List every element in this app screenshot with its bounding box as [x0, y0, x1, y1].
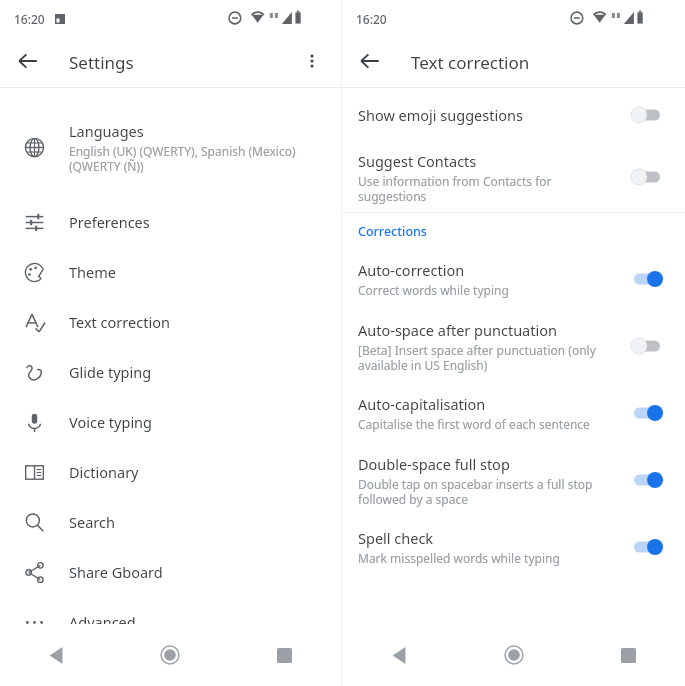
staticText: Correct words while typing [358, 282, 509, 298]
button[interactable]: Recents [571, 624, 685, 686]
staticText: Glide typing [69, 362, 152, 382]
button[interactable]: Search [0, 497, 341, 547]
button[interactable]: Advanced [0, 597, 341, 647]
button[interactable]: Auto-capitalisation [342, 382, 685, 444]
staticText: Dictionary [69, 462, 139, 482]
staticText: Use information from Contacts for sugges… [358, 173, 552, 204]
staticText: Share Gboard [69, 562, 163, 582]
staticText: Voice typing [69, 412, 152, 432]
button[interactable]: Double-space full stop [342, 444, 685, 516]
button[interactable]: Spell check [342, 516, 685, 578]
staticText: Languages [69, 121, 144, 141]
staticText: Mark misspelled words while typing [358, 550, 560, 566]
staticText: Theme [69, 262, 116, 282]
button[interactable]: Back [350, 41, 390, 81]
button[interactable]: Share Gboard [0, 547, 341, 597]
button[interactable]: More options [292, 41, 332, 81]
button[interactable]: Languages [0, 97, 341, 197]
staticText: Settings [69, 51, 134, 74]
staticText: Spell check [358, 528, 434, 548]
staticText: Corrections [358, 223, 427, 240]
staticText: [Beta] Insert space after punctuation (o… [358, 342, 596, 373]
staticText: 16:20 [356, 11, 387, 27]
staticText: Capitalise the first word of each senten… [358, 416, 590, 432]
staticText: Preferences [69, 212, 150, 232]
staticText: Text correction [411, 51, 530, 74]
button[interactable]: Back [8, 41, 48, 81]
button[interactable]: Auto-correction [342, 248, 685, 310]
staticText: 16:20 [14, 11, 45, 27]
button[interactable]: Suggest Contacts [342, 142, 685, 212]
staticText: Text correction [69, 312, 170, 332]
staticText: Auto-space after punctuation [358, 320, 557, 340]
button[interactable]: Auto-space after punctuation [342, 310, 685, 382]
staticText: Double tap on spacebar inserts a full st… [358, 476, 593, 507]
staticText: Show emoji suggestions [358, 105, 523, 125]
button[interactable]: Back [0, 624, 113, 686]
button[interactable]: Preferences [0, 197, 341, 247]
button[interactable]: Glide typing [0, 347, 341, 397]
staticText: Double-space full stop [358, 454, 510, 474]
button[interactable]: Back [342, 624, 457, 686]
button[interactable]: Text correction [0, 297, 341, 347]
button[interactable]: Show emoji suggestions [342, 88, 685, 142]
staticText: Suggest Contacts [358, 151, 477, 171]
button[interactable]: Recents [227, 624, 341, 686]
staticText: Search [69, 512, 115, 532]
button[interactable]: Voice typing [0, 397, 341, 447]
button[interactable]: Dictionary [0, 447, 341, 497]
staticText: Advanced [69, 612, 136, 632]
button[interactable]: Theme [0, 247, 341, 297]
staticText: Auto-correction [358, 260, 465, 280]
button[interactable]: Home [457, 624, 571, 686]
staticText: English (UK) (QWERTY), Spanish (Mexico) … [69, 143, 296, 174]
staticText: Auto-capitalisation [358, 394, 486, 414]
button[interactable]: Home [113, 624, 227, 686]
